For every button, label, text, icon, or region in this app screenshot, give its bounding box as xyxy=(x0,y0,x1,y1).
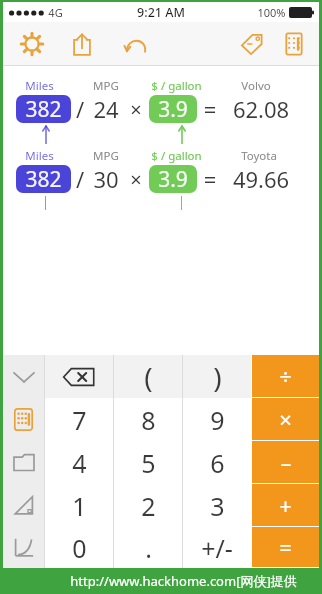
button[interactable]: + xyxy=(252,484,319,526)
button[interactable]: 382 xyxy=(16,95,71,123)
button[interactable]: +/- xyxy=(183,527,251,568)
button[interactable]: Calculator xyxy=(3,398,44,441)
button[interactable]: 3.9 xyxy=(149,165,197,193)
button[interactable]: 2 xyxy=(114,484,182,527)
button[interactable]: Undo xyxy=(121,27,151,61)
button[interactable]: Collapse keypad xyxy=(3,355,44,398)
staticText: 100% xyxy=(257,5,286,20)
staticText: 30 xyxy=(89,164,123,194)
staticText: = xyxy=(197,94,223,124)
staticText: 5 xyxy=(141,446,156,480)
button[interactable]: = xyxy=(252,527,319,567)
staticText: +/- xyxy=(201,531,233,565)
button[interactable]: ( xyxy=(114,355,182,398)
button[interactable]: 382 xyxy=(16,165,71,193)
button[interactable]: 6 xyxy=(183,441,251,484)
staticText: 4 xyxy=(72,446,87,480)
button[interactable]: Keypad xyxy=(279,27,309,61)
button[interactable]: 4 xyxy=(45,441,113,484)
staticText: ( xyxy=(144,358,153,396)
staticText: 62.08 xyxy=(223,94,299,124)
staticText: 6 xyxy=(210,446,225,480)
staticText: / xyxy=(71,164,89,194)
staticText: × xyxy=(123,96,149,123)
staticText: × xyxy=(123,166,149,193)
button[interactable]: Files xyxy=(3,441,44,484)
staticText: = xyxy=(197,164,223,194)
button[interactable]: × xyxy=(252,398,319,440)
staticText: 4G xyxy=(48,5,63,20)
staticText: 49.66 xyxy=(223,164,299,194)
staticText: http://www.hackhome.com[网侠]提供 xyxy=(70,572,297,590)
staticText: $ / gallon xyxy=(151,148,202,164)
button[interactable]: Settings xyxy=(17,27,47,61)
button[interactable]: 9 xyxy=(183,398,251,441)
staticText: + xyxy=(279,490,292,520)
staticText: 9 xyxy=(210,403,225,437)
button[interactable]: Graph xyxy=(3,527,44,568)
button[interactable]: 1 xyxy=(45,484,113,527)
button[interactable]: 8 xyxy=(114,398,182,441)
staticText: $ / gallon xyxy=(151,78,202,94)
button[interactable]: 7 xyxy=(45,398,113,441)
button[interactable]: 3 xyxy=(183,484,251,527)
staticText: × xyxy=(279,404,292,434)
button[interactable]: 5 xyxy=(114,441,182,484)
button[interactable]: Tags xyxy=(237,27,267,61)
button[interactable]: 3.9 xyxy=(149,95,197,123)
staticText: 24 xyxy=(89,94,123,124)
button[interactable]: Geometry xyxy=(3,484,44,527)
staticText: Miles xyxy=(25,78,54,94)
staticText: – xyxy=(280,447,292,477)
button[interactable]: . xyxy=(114,527,182,568)
staticText: 7 xyxy=(72,403,87,437)
staticText: / xyxy=(71,94,89,124)
staticText: Toyota xyxy=(241,148,277,164)
staticText: MPG xyxy=(93,78,119,94)
staticText: = xyxy=(279,532,292,562)
staticText: ÷ xyxy=(279,361,292,391)
button[interactable]: ) xyxy=(183,355,251,398)
button[interactable]: Miles xyxy=(3,144,319,196)
staticText: Volvo xyxy=(241,78,271,94)
staticText: . xyxy=(145,531,152,565)
staticText: 9:21 AM xyxy=(137,4,185,21)
staticText: 0 xyxy=(72,531,87,565)
button[interactable]: – xyxy=(252,441,319,483)
button[interactable]: 0 xyxy=(45,527,113,568)
staticText: ) xyxy=(213,358,222,396)
button[interactable]: Miles xyxy=(3,74,319,126)
button[interactable]: Backspace xyxy=(45,355,113,398)
staticText: 3 xyxy=(210,489,225,523)
staticText: Miles xyxy=(25,148,54,164)
staticText: MPG xyxy=(93,148,119,164)
staticText: 8 xyxy=(141,403,156,437)
staticText: 382 xyxy=(25,165,62,193)
staticText: 3.9 xyxy=(158,95,188,123)
staticText: 1 xyxy=(72,489,87,523)
staticText: 2 xyxy=(141,489,156,523)
staticText: 3.9 xyxy=(158,165,188,193)
staticText: 382 xyxy=(25,95,62,123)
button[interactable]: ÷ xyxy=(252,355,319,397)
button[interactable]: Share xyxy=(67,27,97,61)
